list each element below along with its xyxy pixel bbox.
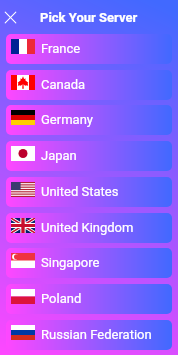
button[interactable]: Japan: [6, 141, 172, 171]
staticText: Russian Federation: [41, 327, 152, 342]
button[interactable]: Poland: [6, 284, 172, 314]
button[interactable]: Singapore: [6, 248, 172, 278]
staticText: Poland: [41, 291, 82, 306]
staticText: Japan: [41, 148, 77, 163]
button[interactable]: France: [6, 34, 172, 64]
staticText: France: [41, 41, 81, 56]
button[interactable]: Russian Federation: [6, 320, 172, 350]
staticText: United States: [41, 184, 119, 199]
staticText: Canada: [41, 77, 86, 92]
button[interactable]: Germany: [6, 105, 172, 135]
button[interactable]: United Kingdom: [6, 213, 172, 243]
staticText: Singapore: [41, 255, 100, 270]
staticText: Pick Your Server: [40, 10, 138, 25]
button[interactable]: Close: [4, 11, 17, 24]
button[interactable]: United States: [6, 177, 172, 207]
button[interactable]: Canada: [6, 70, 172, 100]
staticText: Germany: [41, 112, 93, 127]
staticText: United Kingdom: [41, 220, 134, 235]
